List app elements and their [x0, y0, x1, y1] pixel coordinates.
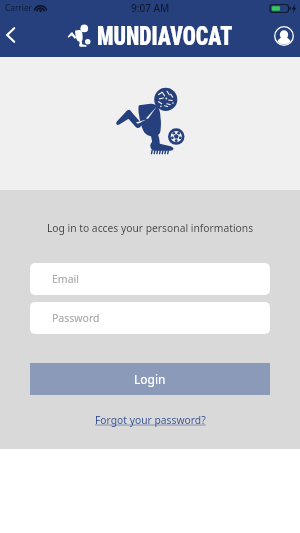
staticText: Login [134, 371, 166, 387]
staticText: Log in to acces your personal informatio… [0, 221, 300, 235]
staticText: Carrier [5, 2, 32, 13]
button[interactable]: Password [30, 302, 270, 334]
button[interactable]: Login [30, 363, 270, 395]
staticText: Email [52, 272, 79, 286]
staticText: 9:07 AM [131, 1, 170, 15]
staticText: MUNDIAVOCAT [97, 22, 233, 51]
button[interactable]: Profile [265, 17, 300, 55]
button[interactable]: Email [30, 263, 270, 295]
button[interactable]: Back [0, 16, 21, 54]
staticText: Password [52, 311, 100, 325]
button[interactable]: Forgot your password? [95, 413, 206, 427]
